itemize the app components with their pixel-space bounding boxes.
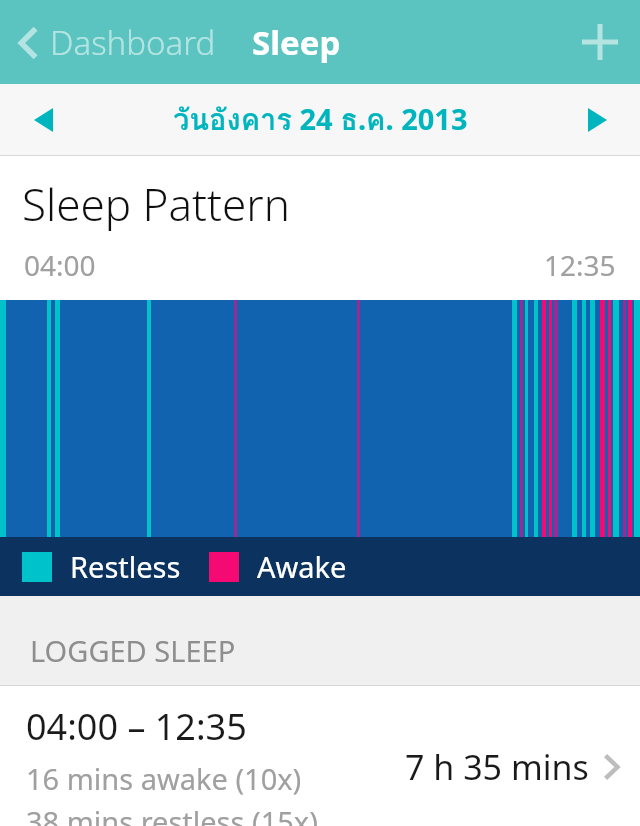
staticText: 04:00 xyxy=(24,246,96,284)
button[interactable]: Previous day xyxy=(16,93,70,147)
staticText: Restless xyxy=(70,547,181,586)
staticText: Sleep Pattern xyxy=(22,174,290,234)
staticText: 16 mins awake (10x) xyxy=(26,759,302,798)
staticText: 04:00 – 12:35 xyxy=(26,702,247,751)
button[interactable]: 04:00 – 12:35 xyxy=(0,686,640,826)
staticText: Sleep xyxy=(252,20,341,65)
button[interactable]: Add sleep log xyxy=(572,14,628,70)
staticText: LOGGED SLEEP xyxy=(30,631,236,670)
staticText: Dashboard xyxy=(50,20,216,65)
staticText: 12:35 xyxy=(544,246,616,284)
staticText: วันอังคาร 24 ธ.ค. 2013 xyxy=(173,97,468,143)
staticText: Awake xyxy=(257,547,347,586)
button[interactable]: Next day xyxy=(570,93,624,147)
staticText: 7 h 35 mins xyxy=(405,744,589,790)
button[interactable]: Dashboard xyxy=(12,10,222,75)
staticText: 38 mins restless (15x) xyxy=(26,802,318,826)
